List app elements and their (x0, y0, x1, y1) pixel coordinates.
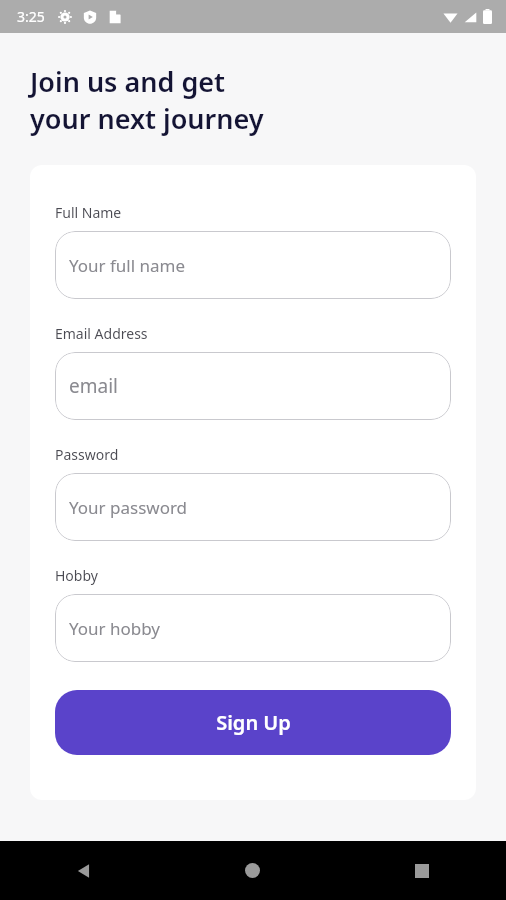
staticText: Your password (69, 496, 188, 519)
staticText: Your full name (69, 254, 186, 277)
button[interactable]: Recent apps (337, 841, 506, 900)
button[interactable]: Home (168, 841, 337, 900)
button[interactable]: Sign Up (55, 690, 451, 755)
staticText: Hobby (55, 566, 98, 585)
staticText: your next journey (30, 100, 264, 137)
staticText: Join us and get (30, 63, 226, 100)
staticText: Your hobby (69, 617, 161, 640)
staticText: Sign Up (216, 709, 291, 736)
button[interactable]: email (55, 352, 451, 420)
button[interactable]: Your full name (55, 231, 451, 299)
button[interactable]: Your hobby (55, 594, 451, 662)
staticText: Email Address (55, 324, 148, 343)
staticText: 3:25 (17, 7, 45, 26)
staticText: Password (55, 445, 119, 464)
staticText: Full Name (55, 203, 122, 222)
button[interactable]: Back (0, 841, 168, 900)
button[interactable]: Your password (55, 473, 451, 541)
staticText: email (69, 373, 118, 399)
